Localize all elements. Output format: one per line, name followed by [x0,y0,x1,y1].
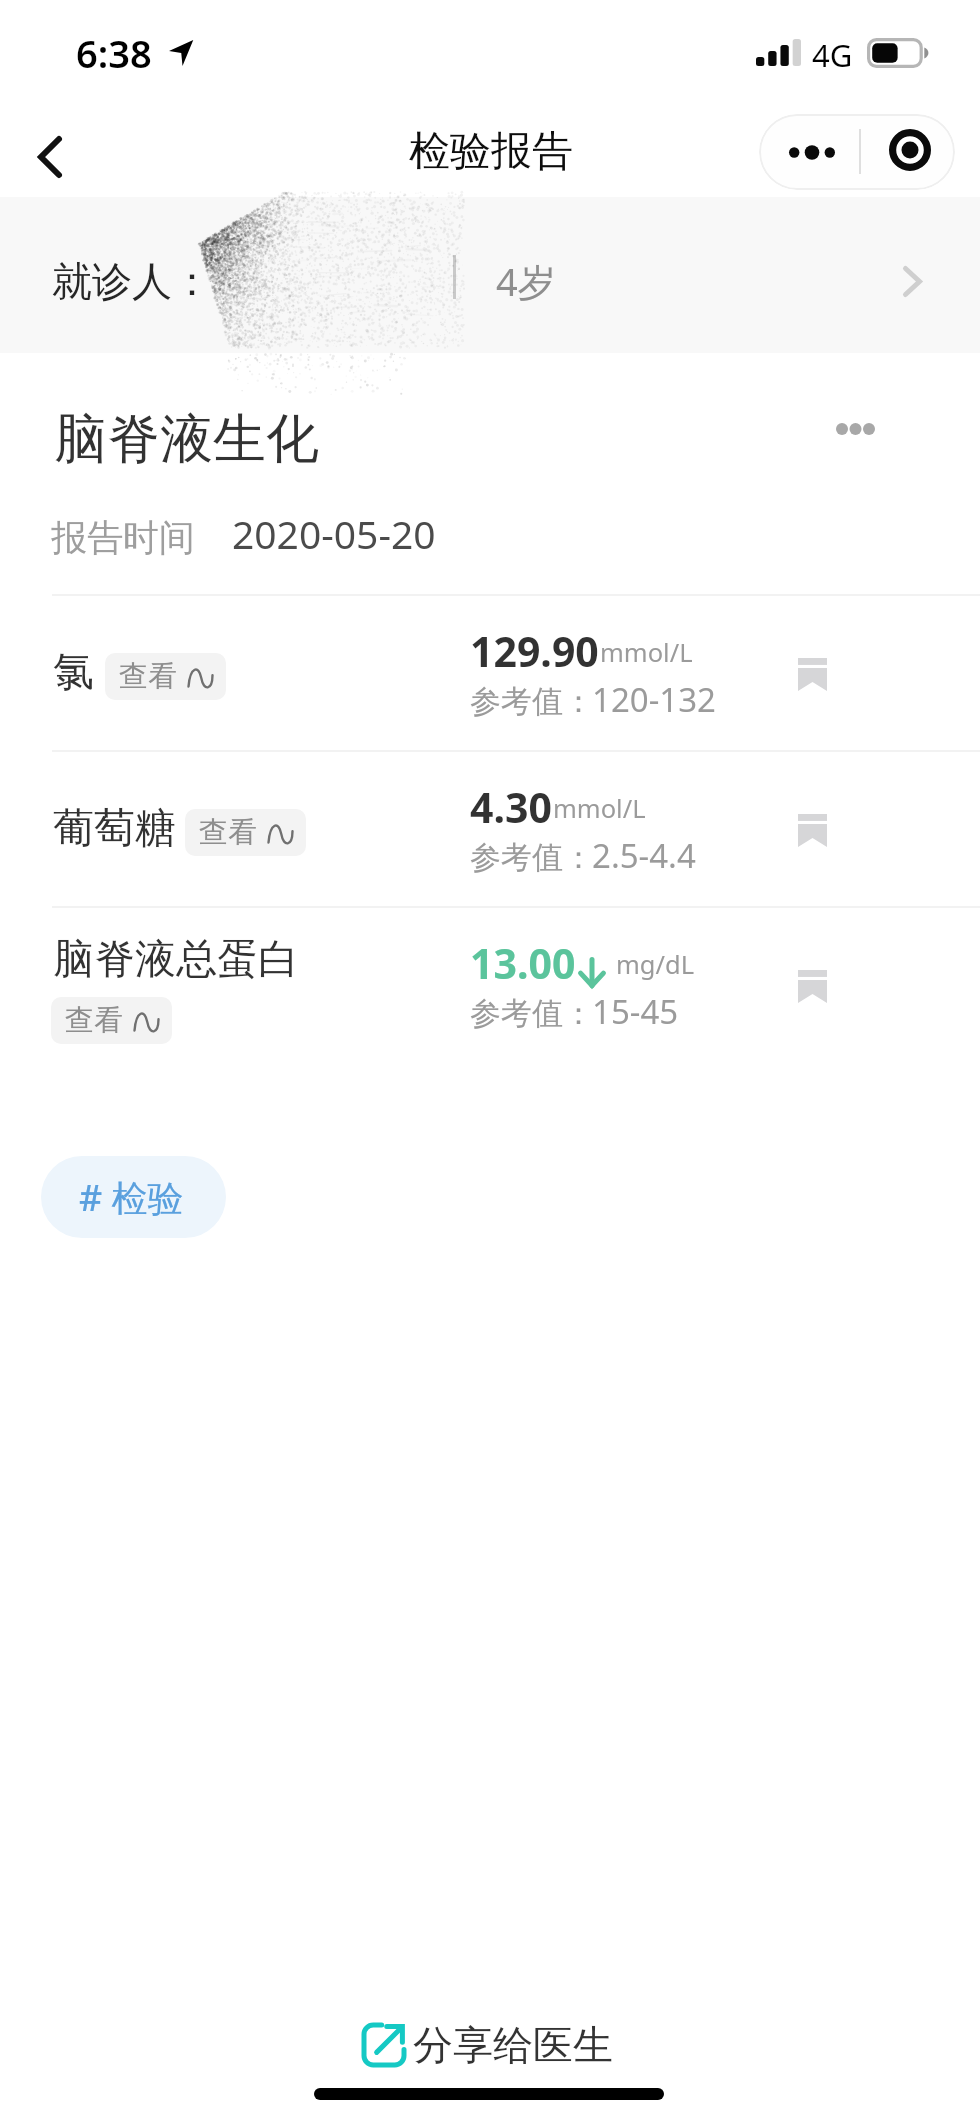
staticText: 参考值： [470,838,594,877]
staticText: 脑脊液生化 [54,406,319,473]
button[interactable]: 氯 [0,594,980,750]
staticText: 13.00 [470,935,576,991]
button[interactable]: More [800,394,910,464]
staticText: # 检验 [79,1173,184,1222]
staticText: 氯 [53,647,94,699]
button[interactable]: # 检验 [41,1156,226,1238]
staticText: 葡萄糖 [53,803,176,855]
staticText: 15-45 [592,989,679,1034]
button[interactable]: Bookmark [776,950,848,1022]
button[interactable]: 分享给医生 [355,2014,619,2076]
button[interactable]: Bookmark [776,794,848,866]
button[interactable]: 就诊人： [0,197,980,353]
staticText: mg/dL [616,947,695,982]
staticText: 2020-05-20 [232,507,436,560]
staticText: 查看 [65,1002,123,1039]
staticText: 2.5-4.4 [592,833,696,878]
button[interactable]: Back [14,125,84,197]
staticText: 查看 [119,658,177,695]
button[interactable]: 查看 [51,997,172,1044]
staticText: 120-132 [592,677,716,722]
staticText: 脑脊液总蛋白 [53,934,299,986]
staticText: 分享给医生 [413,2020,613,2070]
staticText: 6:38 [76,27,152,79]
staticText: 查看 [199,814,257,851]
staticText: 4岁 [496,255,556,307]
staticText: mmol/L [600,635,693,670]
button[interactable]: Bookmark [776,638,848,710]
button[interactable]: Close mini program [857,114,955,190]
staticText: 检验报告 [409,126,573,178]
staticText: 报告时间 [51,515,195,560]
button[interactable]: 查看 [185,809,306,856]
button[interactable]: 脑脊液总蛋白 [0,906,980,1062]
staticText: 就诊人： [52,256,212,306]
staticText: 4.30 [470,779,552,835]
button[interactable]: More options [759,114,857,190]
staticText: mmol/L [553,791,646,826]
staticText: 129.90 [470,623,599,679]
button[interactable]: 查看 [105,653,226,700]
staticText: 参考值： [470,682,594,721]
staticText: 4G [812,34,853,76]
button[interactable]: 葡萄糖 [0,750,980,906]
staticText: 参考值： [470,994,594,1033]
